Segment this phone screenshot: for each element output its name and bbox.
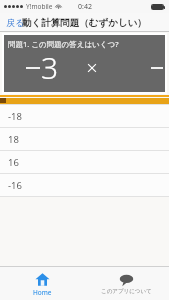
staticText: 0:42 <box>78 2 92 12</box>
staticText: -18 <box>8 110 22 123</box>
staticText: Home <box>33 288 52 297</box>
staticText: 3 <box>41 47 59 88</box>
button[interactable]: -16 <box>0 174 169 196</box>
staticText: Y!mobile <box>26 2 53 11</box>
button[interactable]: 戻る <box>0 14 31 31</box>
staticText: 18 <box>8 133 19 146</box>
button[interactable]: 18 <box>0 128 169 150</box>
staticText: -16 <box>8 179 22 192</box>
button[interactable]: 16 <box>0 151 169 173</box>
staticText: 問題1. この問題の答えはいくつ? <box>8 39 119 49</box>
staticText: 戻る <box>6 17 25 28</box>
staticText: 16 <box>8 156 19 169</box>
staticText: 動く計算問題（むずかしい） <box>22 17 147 29</box>
staticText: このアプリについて <box>101 288 152 295</box>
button[interactable]: このアプリについて <box>84 267 169 300</box>
button[interactable]: Home <box>0 267 84 300</box>
button[interactable]: -18 <box>0 105 169 127</box>
